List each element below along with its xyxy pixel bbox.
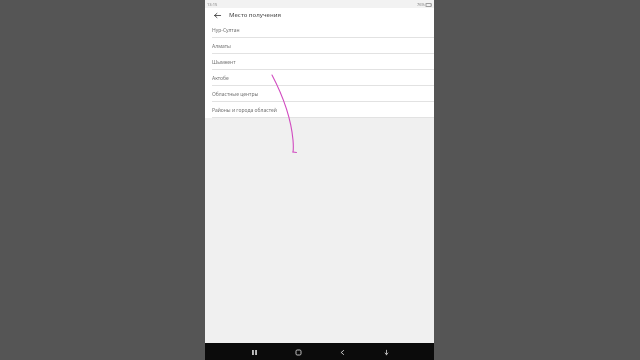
button[interactable]: Шымкент (205, 54, 434, 70)
button[interactable]: Back (335, 345, 349, 359)
button[interactable]: Home (291, 345, 305, 359)
staticText: Актобе (212, 75, 229, 82)
button[interactable]: Hide keyboard (379, 345, 393, 359)
button[interactable]: Актобе (205, 70, 434, 86)
staticText: 13:15 (207, 2, 218, 7)
button[interactable]: Back (210, 8, 224, 22)
staticText: Алматы (212, 43, 231, 50)
button[interactable]: Алматы (205, 38, 434, 54)
button[interactable]: Областные центры (205, 86, 434, 102)
staticText: Шымкент (212, 59, 236, 66)
button[interactable]: Нур-Султан (205, 22, 434, 38)
staticText: 76% (417, 2, 425, 7)
button[interactable]: Районы и города областей (205, 102, 434, 118)
staticText: Областные центры (212, 91, 259, 98)
staticText: Место получения (229, 11, 282, 19)
button[interactable]: Recents (247, 345, 261, 359)
staticText: Районы и города областей (212, 107, 277, 114)
staticText: Нур-Султан (212, 27, 240, 34)
